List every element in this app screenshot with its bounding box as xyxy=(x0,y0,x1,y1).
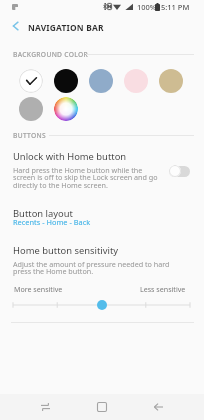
staticText: NAVIGATION BAR xyxy=(28,22,104,33)
button[interactable]: Colour option xyxy=(19,97,43,121)
staticText: More sensitive xyxy=(14,284,63,294)
button[interactable]: Button layout xyxy=(0,204,204,232)
button[interactable]: Back xyxy=(0,14,30,38)
button[interactable]: Colour option xyxy=(19,69,43,93)
button[interactable]: Home xyxy=(88,394,116,420)
button[interactable]: Unlock with Home button toggle xyxy=(169,164,190,177)
staticText: 5:11 PM xyxy=(161,2,190,12)
button[interactable]: Unlock with Home button xyxy=(0,145,204,195)
button[interactable]: Colour option xyxy=(159,69,183,93)
button[interactable]: Recents xyxy=(31,394,59,420)
button[interactable]: Custom colour xyxy=(54,97,78,121)
button[interactable]: Back xyxy=(144,394,172,420)
staticText: Adjust the amount of pressure needed to … xyxy=(13,259,170,277)
button[interactable]: Colour option xyxy=(124,69,148,93)
button[interactable]: Colour option xyxy=(54,69,78,93)
staticText: Recents - Home - Back xyxy=(13,217,91,227)
staticText: Home button sensitivity xyxy=(13,244,119,257)
staticText: 100% xyxy=(137,2,157,12)
staticText: Unlock with Home button xyxy=(13,150,127,163)
staticText: Hard press the Home button while the scr… xyxy=(13,165,158,191)
staticText: Button layout xyxy=(13,207,73,220)
staticText: BACKGROUND COLOR xyxy=(13,50,89,59)
button[interactable]: Colour option xyxy=(89,69,113,93)
staticText: Less sensitive xyxy=(140,284,186,294)
staticText: BUTTONS xyxy=(13,131,47,140)
button[interactable]: Home button sensitivity slider xyxy=(0,299,204,311)
